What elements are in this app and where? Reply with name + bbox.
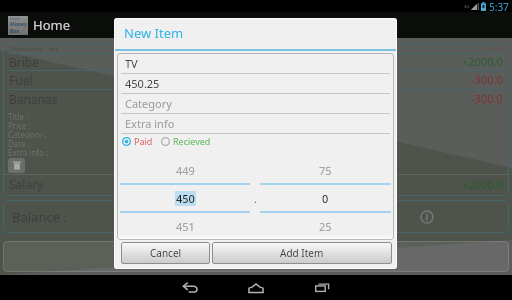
staticText: +2000.0 [462, 177, 503, 192]
staticText: 449 [176, 163, 195, 178]
staticText: Cancel [150, 246, 182, 260]
staticText: -300.0 [471, 72, 503, 87]
staticText: 451 [176, 219, 195, 234]
staticText: -300.0 [471, 91, 503, 106]
button[interactable]: Delete [8, 158, 25, 173]
staticText: Simple [10, 17, 20, 21]
staticText: Home [33, 16, 70, 34]
staticText: Fuel [9, 72, 33, 88]
button[interactable]: Cancel [121, 242, 210, 264]
staticText: 0 [322, 191, 329, 206]
button[interactable]: Home [223, 275, 289, 300]
button[interactable]: Fuel [9, 70, 503, 89]
button[interactable]: Salary [9, 174, 503, 194]
staticText: Title : [8, 111, 29, 120]
button[interactable] [3, 241, 509, 272]
staticText: Bananas [9, 91, 58, 107]
staticText: 450 [176, 191, 195, 206]
staticText: 75 [319, 163, 332, 178]
button[interactable]: Add Item [212, 242, 392, 264]
button[interactable]: 450.25 [119, 74, 392, 94]
button[interactable]: Recent apps [289, 275, 355, 300]
staticText: Date : [8, 138, 30, 147]
staticText: Extra info [125, 116, 175, 131]
staticText: Balance : [12, 208, 67, 226]
button[interactable]: Balance : [3, 200, 509, 233]
button[interactable]: 75 [260, 157, 391, 239]
staticText: + / - [492, 45, 503, 53]
staticText: TV [125, 56, 138, 71]
staticText: Category : [8, 129, 47, 138]
button[interactable]: Paid [122, 135, 153, 147]
staticText: 5:37 [489, 0, 509, 12]
staticText: 450.25 [125, 76, 160, 91]
button[interactable]: App icon [8, 16, 28, 35]
staticText: Price : [8, 120, 31, 129]
staticText: Salary [9, 176, 44, 192]
button[interactable]: Back [157, 275, 223, 300]
staticText: Recieved [173, 135, 211, 147]
staticText: Transaction list [9, 45, 58, 53]
staticText: Paid [134, 135, 153, 147]
staticText: Extra info : [8, 147, 49, 156]
staticText: +2000.0 [462, 54, 503, 69]
staticText: 25 [319, 219, 332, 234]
button[interactable]: Bribe [9, 53, 503, 70]
button[interactable]: Extra info [119, 114, 392, 134]
staticText: . [254, 191, 257, 206]
staticText: 3G [464, 4, 470, 9]
button[interactable]: Recieved [161, 135, 211, 147]
staticText: Add Item [280, 246, 324, 260]
button[interactable]: Bananas [9, 89, 503, 108]
button[interactable]: Category [119, 94, 392, 114]
staticText: New Item [124, 24, 184, 42]
staticText: Category [125, 96, 172, 111]
button[interactable]: 449 [120, 157, 250, 239]
staticText: Bribe [9, 54, 40, 70]
button[interactable]: TV [119, 54, 392, 74]
staticText: MoneyBox [10, 21, 28, 35]
